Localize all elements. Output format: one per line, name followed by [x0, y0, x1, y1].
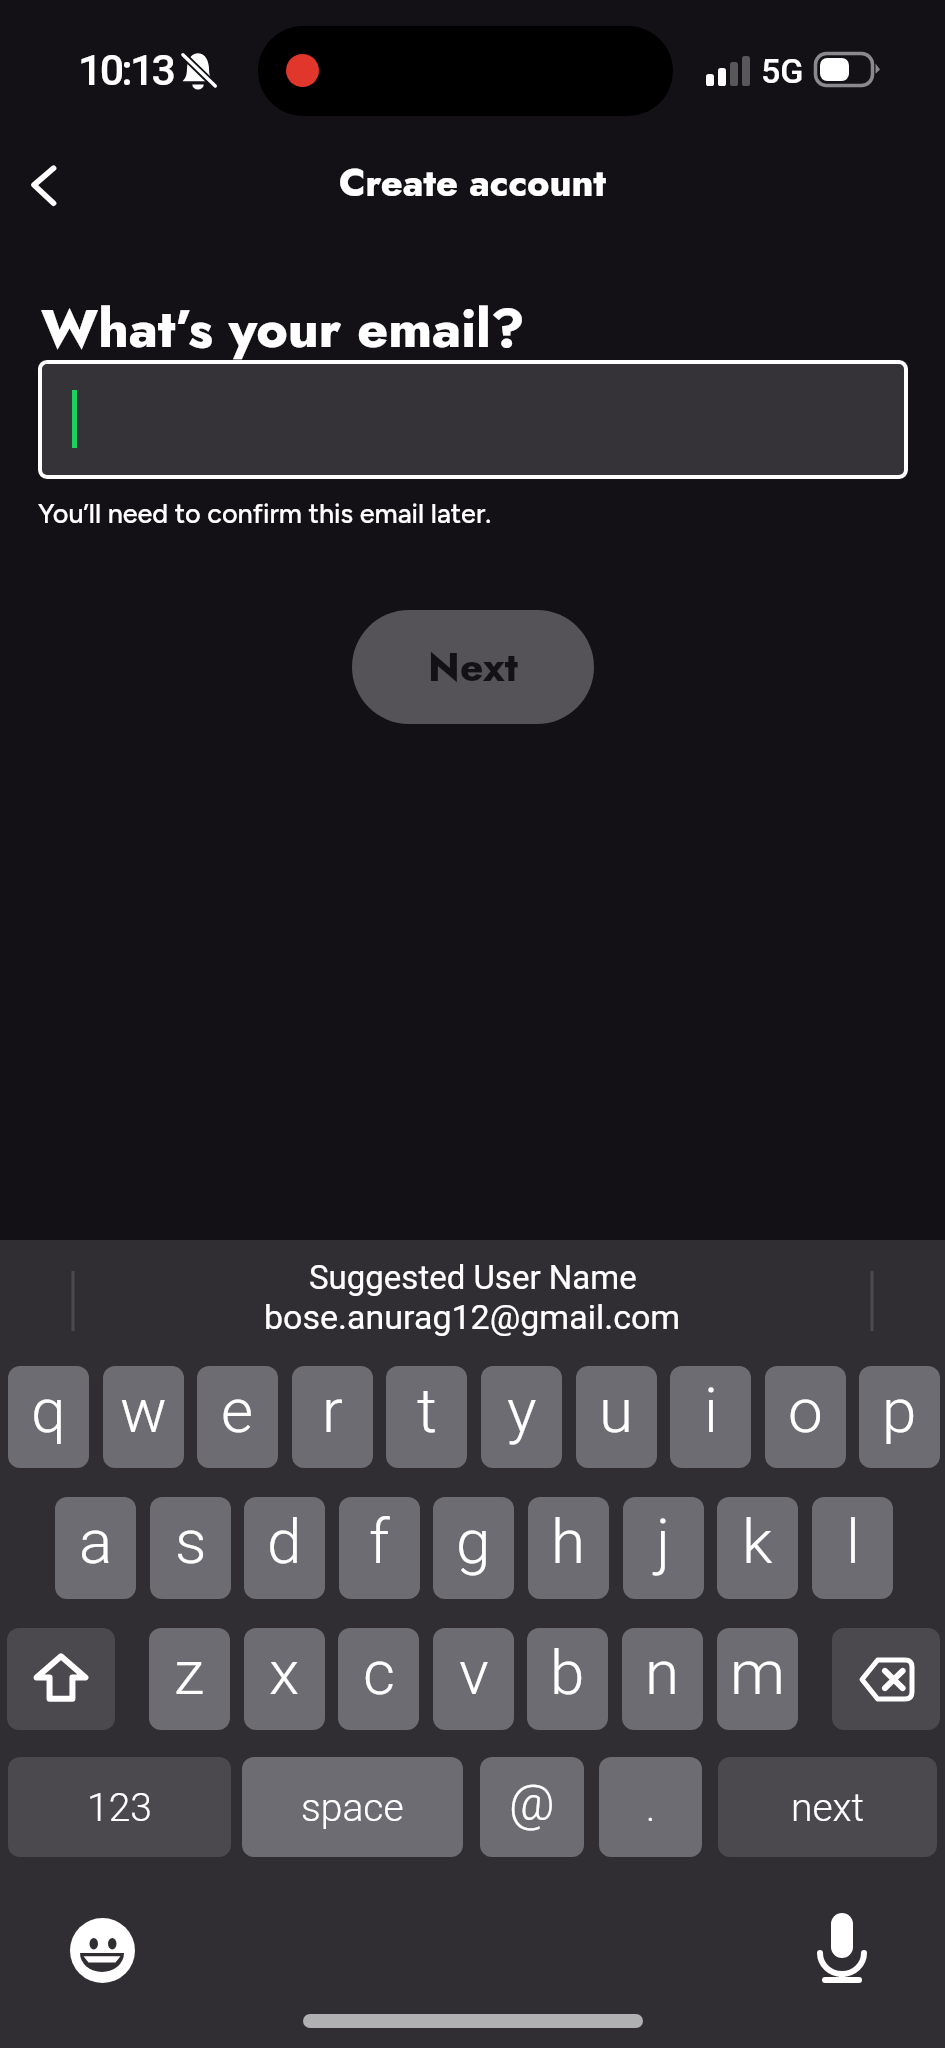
staticText: y [507, 1374, 537, 1447]
staticText: @ [509, 1774, 555, 1833]
staticText: l [846, 1505, 860, 1578]
staticText: d [267, 1505, 302, 1578]
button[interactable]: t [386, 1366, 467, 1468]
staticText: h [551, 1505, 586, 1578]
staticText: j [656, 1505, 671, 1578]
staticText: g [456, 1505, 491, 1578]
button[interactable] [38, 360, 908, 479]
staticText: z [174, 1636, 205, 1709]
staticText: next [791, 1785, 865, 1831]
button[interactable]: f [339, 1497, 420, 1599]
button[interactable]: a [55, 1497, 136, 1599]
button[interactable]: u [576, 1366, 657, 1468]
staticText: r [322, 1374, 343, 1447]
staticText: 123 [87, 1785, 152, 1831]
staticText: w [120, 1374, 167, 1447]
button[interactable]: v [433, 1628, 514, 1730]
staticText: i [704, 1374, 718, 1447]
staticText: v [459, 1636, 489, 1709]
staticText: k [742, 1505, 773, 1578]
button[interactable]: b [527, 1628, 608, 1730]
button[interactable]: Next [352, 610, 594, 724]
staticText: s [175, 1505, 207, 1578]
staticText: You’ll need to confirm this email later. [38, 497, 492, 529]
staticText: u [599, 1374, 634, 1447]
button[interactable]: . [599, 1757, 702, 1857]
staticText: b [550, 1636, 585, 1709]
staticText: x [269, 1636, 300, 1709]
staticText: space [301, 1785, 404, 1831]
staticText: . [646, 1785, 656, 1831]
button[interactable]: y [481, 1366, 562, 1468]
button[interactable]: h [528, 1497, 609, 1599]
staticText: 10:13 [78, 45, 174, 95]
staticText: q [31, 1374, 66, 1447]
staticText: Next [428, 638, 518, 696]
staticText: t [417, 1374, 437, 1447]
button[interactable]: r [292, 1366, 373, 1468]
button[interactable]: c [338, 1628, 419, 1730]
button[interactable]: 123 [8, 1757, 231, 1857]
button[interactable]: Backspace [832, 1628, 940, 1730]
button[interactable]: m [717, 1628, 798, 1730]
button[interactable]: g [433, 1497, 514, 1599]
button[interactable]: o [765, 1366, 846, 1468]
button[interactable]: x [244, 1628, 325, 1730]
button[interactable]: k [717, 1497, 798, 1599]
staticText: a [79, 1505, 113, 1578]
button[interactable]: l [812, 1497, 893, 1599]
button[interactable]: p [859, 1366, 940, 1468]
button[interactable]: i [670, 1366, 751, 1468]
staticText: m [730, 1636, 785, 1709]
button[interactable]: Shift [7, 1628, 115, 1730]
button[interactable]: next [718, 1757, 937, 1857]
staticText: What’s your email? [41, 290, 525, 367]
button[interactable]: d [244, 1497, 325, 1599]
staticText: Suggested User Name [309, 1258, 637, 1297]
button[interactable]: s [150, 1497, 231, 1599]
staticText: e [221, 1374, 254, 1447]
staticText: bose.anurag12@gmail.com [264, 1297, 681, 1337]
button[interactable]: q [8, 1366, 89, 1468]
button[interactable]: Dictate [806, 1908, 880, 1990]
staticText: c [363, 1636, 395, 1709]
staticText: f [369, 1505, 390, 1578]
button[interactable]: space [242, 1757, 463, 1857]
staticText: p [882, 1374, 917, 1447]
button[interactable]: w [103, 1366, 184, 1468]
staticText: 5G [761, 51, 804, 91]
button[interactable]: @ [480, 1757, 584, 1857]
button[interactable]: z [149, 1628, 230, 1730]
staticText: Create account [0, 156, 945, 210]
staticText: n [645, 1636, 680, 1709]
button[interactable]: Back [13, 150, 87, 220]
button[interactable]: j [623, 1497, 704, 1599]
button[interactable]: n [622, 1628, 703, 1730]
staticText: o [788, 1374, 823, 1447]
button[interactable]: e [197, 1366, 278, 1468]
button[interactable]: Emoji [62, 1910, 144, 1992]
